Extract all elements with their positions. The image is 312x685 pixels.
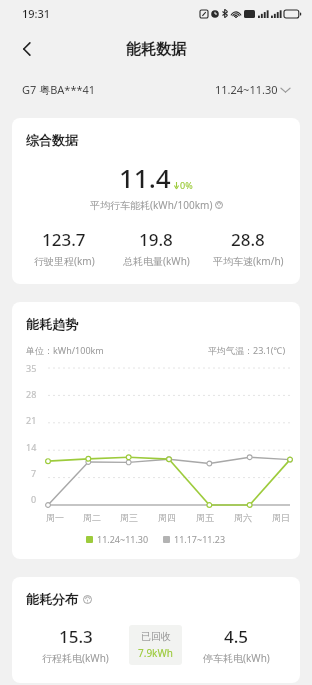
button[interactable]: Back — [8, 30, 46, 68]
staticText: 35 — [26, 362, 37, 374]
staticText: 11.24~11.30 — [215, 82, 278, 97]
staticText: 周六 — [234, 512, 252, 523]
staticText: 4.5 — [224, 625, 249, 648]
staticText: 19.8 — [139, 228, 173, 251]
staticText: 15.3 — [59, 625, 93, 648]
button[interactable]: 11.24~11.30 — [215, 82, 290, 97]
staticText: 7.9kWh — [138, 646, 173, 660]
staticText: 能耗分布 — [26, 591, 78, 607]
staticText: 周四 — [158, 512, 176, 523]
button[interactable]: 123.7 — [18, 228, 110, 268]
staticText: 停车耗电(kWh) — [203, 651, 270, 665]
staticText: 0 — [31, 493, 37, 505]
staticText: 平均车速(km/h) — [213, 254, 284, 268]
button[interactable]: 11.24~11.30 — [86, 533, 149, 545]
staticText: 周五 — [196, 512, 214, 523]
staticText: 14 — [26, 441, 37, 453]
staticText: G7 粤BA***41 — [22, 82, 96, 97]
staticText: 28 — [26, 388, 37, 400]
staticText: 周一 — [46, 512, 64, 523]
staticText: 21 — [26, 414, 37, 426]
staticText: 能耗数据 — [126, 40, 186, 59]
staticText: 综合数据 — [26, 132, 78, 148]
button[interactable]: 已回收 — [129, 625, 182, 665]
staticText: 行驶里程(km) — [34, 254, 95, 268]
staticText: 能耗趋势 — [26, 316, 78, 332]
staticText: 单位：kWh/100km — [26, 344, 104, 356]
staticText: 总耗电量(kWh) — [123, 254, 190, 268]
button[interactable]: 19.8 — [110, 228, 202, 268]
staticText: 平均气温：23.1(℃) — [208, 344, 286, 356]
staticText: 123.7 — [42, 228, 86, 251]
staticText: 已回收 — [141, 630, 171, 643]
staticText: 平均行车能耗(kWh/100km) — [90, 198, 213, 212]
staticText: 周二 — [83, 512, 101, 523]
staticText: 28.8 — [231, 228, 265, 251]
staticText: 11.17~11.23 — [174, 533, 226, 545]
staticText: 0% — [180, 179, 193, 191]
staticText: 周日 — [272, 512, 290, 523]
button[interactable]: 15.3 — [22, 625, 129, 665]
staticText: 周三 — [120, 512, 138, 523]
staticText: 19:31 — [22, 6, 51, 21]
button[interactable]: 4.5 — [182, 625, 290, 665]
staticText: 11.24~11.30 — [97, 533, 149, 545]
button[interactable]: 28.8 — [202, 228, 294, 268]
staticText: 11.4 — [119, 160, 171, 195]
staticText: 行程耗电(kWh) — [42, 651, 109, 665]
staticText: 7 — [31, 467, 37, 479]
button[interactable]: 11.17~11.23 — [163, 533, 226, 545]
